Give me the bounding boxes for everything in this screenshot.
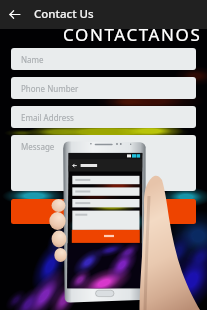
- staticText: Submit: [89, 206, 118, 218]
- staticText: Email Address: [21, 112, 74, 123]
- button[interactable]: Email Address: [11, 106, 196, 128]
- button[interactable]: Message: [11, 135, 196, 191]
- button[interactable]: Name: [11, 48, 196, 70]
- staticText: Message: [21, 141, 55, 152]
- button[interactable]: Phone Number: [11, 77, 196, 99]
- staticText: Phone Number: [21, 83, 79, 94]
- staticText: Name: [21, 54, 44, 65]
- button[interactable]: Submit: [11, 199, 196, 224]
- staticText: CONTACTANOS: [63, 23, 202, 42]
- staticText: Contact Us: [34, 6, 94, 22]
- button[interactable]: Back: [0, 0, 29, 29]
